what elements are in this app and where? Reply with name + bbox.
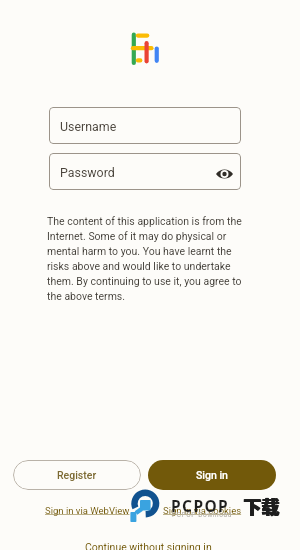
staticText: The content of this application is from … (47, 215, 247, 303)
staticText: PCPOP Download (172, 511, 232, 519)
staticText: Password (60, 165, 115, 180)
button[interactable]: Sign in (148, 460, 276, 490)
button[interactable]: Show password (212, 162, 236, 186)
staticText: Register (57, 469, 97, 481)
staticText: 下载 (243, 493, 279, 519)
button[interactable]: Sign in via cookies (158, 502, 247, 518)
staticText: Username (60, 119, 117, 134)
staticText: 下载 (244, 493, 280, 519)
staticText: 下载 (243, 493, 279, 519)
staticText: Sign in via WebView (45, 505, 130, 516)
staticText: Sign in via cookies (163, 505, 242, 516)
staticText: 下载 (243, 493, 279, 519)
staticText: 下载 (244, 493, 280, 519)
button[interactable]: Username (49, 107, 241, 144)
button[interactable]: Continue without signing in (79, 538, 218, 550)
button[interactable]: Register (13, 460, 141, 490)
staticText: 下载 (243, 493, 279, 519)
button[interactable]: Password (49, 153, 241, 190)
staticText: Continue without signing in (85, 541, 212, 550)
button[interactable]: Sign in via WebView (40, 502, 135, 518)
staticText: PCPOP (171, 495, 230, 516)
staticText: Sign in (196, 469, 228, 481)
